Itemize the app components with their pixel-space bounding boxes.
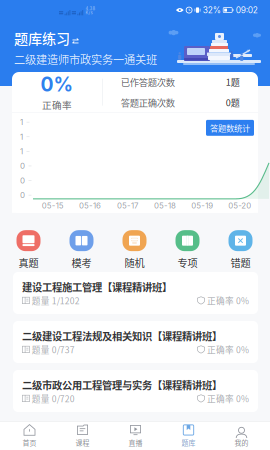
button[interactable]: 错题: [214, 231, 267, 269]
staticText: 题量 0/720: [30, 392, 75, 405]
staticText: 首页: [22, 438, 36, 448]
staticText: 模考: [71, 255, 91, 270]
button[interactable]: 直播: [109, 422, 162, 450]
staticText: 0题: [226, 96, 240, 109]
staticText: 1: [20, 132, 23, 142]
button[interactable]: 模考: [55, 231, 108, 269]
staticText: 二级建造师市政实务一通关班: [14, 51, 157, 67]
staticText: K/s: [86, 10, 93, 15]
staticText: 05-19: [191, 201, 213, 210]
staticText: 正确率: [42, 98, 72, 111]
staticText: 我的: [234, 438, 248, 448]
button[interactable]: 我的: [215, 422, 268, 450]
button[interactable]: 专项: [161, 231, 214, 269]
staticText: 09:02: [236, 5, 258, 15]
staticText: 1: [20, 146, 23, 156]
staticText: 二级市政公用工程管理与实务【课程精讲班】: [22, 377, 222, 392]
button[interactable]: 题库练习: [14, 27, 79, 48]
button[interactable]: 答题数统计: [206, 120, 254, 136]
button[interactable]: 题库: [162, 422, 215, 450]
button[interactable]: 二级市政公用工程管理与实务【课程精讲班】: [13, 370, 258, 412]
button[interactable]: 建设工程施工管理【课程精讲班】: [13, 272, 258, 314]
staticText: 1题: [226, 75, 240, 88]
staticText: 05-20: [228, 201, 251, 210]
staticText: 真题: [18, 255, 38, 270]
staticText: 4.38: [86, 6, 96, 11]
staticText: 0: [20, 161, 25, 171]
staticText: 随机: [124, 255, 144, 270]
staticText: 05-16: [79, 201, 101, 210]
staticText: 0: [20, 176, 25, 185]
staticText: 题量 1/1202: [30, 294, 80, 307]
button[interactable]: 真题: [2, 231, 55, 269]
staticText: 专项: [177, 255, 197, 270]
button[interactable]: 二级建设工程法规及相关知识【课程精讲班】: [13, 321, 258, 363]
button[interactable]: 课程: [56, 422, 109, 450]
staticText: 已作答题次数: [121, 75, 175, 89]
staticText: 0: [20, 190, 25, 200]
button[interactable]: 首页: [3, 422, 56, 450]
staticText: 1: [20, 117, 23, 127]
staticText: 05-18: [154, 201, 176, 210]
staticText: 直播: [128, 438, 142, 448]
staticText: 05-15: [42, 201, 64, 210]
staticText: 建设工程施工管理【课程精讲班】: [22, 279, 172, 294]
staticText: 错题: [230, 255, 250, 270]
staticText: 题库练习: [14, 27, 70, 48]
staticText: 32%: [203, 5, 221, 15]
button[interactable]: 随机: [108, 231, 161, 269]
staticText: 正确率 0%: [205, 294, 249, 307]
staticText: 课程: [75, 438, 89, 448]
staticText: 题库: [181, 438, 195, 448]
staticText: 正确率 0%: [205, 392, 249, 405]
staticText: 题量 0/737: [30, 343, 75, 356]
staticText: 0%: [40, 73, 73, 96]
staticText: 正确率 0%: [205, 343, 249, 356]
staticText: 二级建设工程法规及相关知识【课程精讲班】: [22, 328, 222, 343]
staticText: 答题数统计: [210, 122, 250, 134]
staticText: 答题正确次数: [121, 96, 175, 109]
staticText: 05-17: [117, 201, 138, 210]
